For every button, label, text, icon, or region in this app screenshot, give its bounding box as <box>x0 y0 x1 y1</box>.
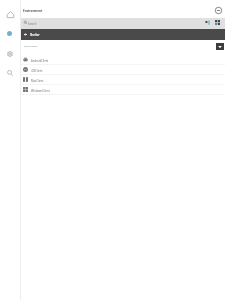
button[interactable]: MacClient <box>21 75 225 84</box>
button[interactable]: AndroidClient <box>21 55 225 64</box>
staticText: Search <box>28 22 37 26</box>
button[interactable]: Filter <box>216 43 224 50</box>
staticText: Environment <box>23 9 43 13</box>
button[interactable]: iOSClient <box>21 65 225 74</box>
button[interactable]: WindowsClient <box>21 85 225 94</box>
button[interactable]: Sort <box>202 17 213 28</box>
staticText: MacClient <box>31 79 44 83</box>
button[interactable]: Account <box>212 4 224 16</box>
staticText: Select items <box>24 44 38 47</box>
staticText: AndroidClient <box>31 59 49 63</box>
button[interactable]: Grid view <box>212 17 223 28</box>
button[interactable]: Home <box>3 7 17 21</box>
button[interactable]: Search <box>3 66 17 80</box>
button[interactable]: Environment <box>7 31 12 36</box>
staticText: iOSClient <box>31 69 43 73</box>
button[interactable]: Settings <box>3 47 17 61</box>
staticText: WindowsClient <box>31 89 50 93</box>
button[interactable]: Back <box>20 29 31 40</box>
staticText: Shelter <box>30 33 40 37</box>
